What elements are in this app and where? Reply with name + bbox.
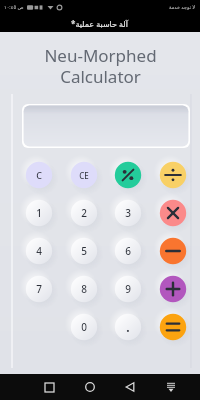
- button[interactable]: Back: [121, 378, 139, 396]
- button[interactable]: Equals: [158, 312, 188, 342]
- button[interactable]: Recents: [40, 378, 58, 396]
- button[interactable]: Subtract: [158, 236, 188, 266]
- button[interactable]: CE: [69, 160, 99, 190]
- button[interactable]: Multiply: [158, 198, 188, 228]
- button[interactable]: Percent: [113, 160, 143, 190]
- button[interactable]: 1: [24, 198, 54, 228]
- staticText: 2: [81, 206, 87, 220]
- staticText: لا توجد خدمة: [169, 4, 196, 11]
- staticText: 9: [125, 282, 131, 296]
- button[interactable]: Home: [81, 378, 99, 396]
- button[interactable]: Hide keyboard: [162, 378, 180, 396]
- button[interactable]: 9: [113, 274, 143, 304]
- staticText: 3: [125, 206, 131, 220]
- button[interactable]: Add: [158, 274, 188, 304]
- staticText: *آلة حاسبة عملية: [71, 18, 129, 29]
- staticText: 0: [81, 320, 87, 334]
- button[interactable]: 6: [113, 236, 143, 266]
- staticText: 1: [36, 206, 42, 220]
- staticText: 5: [81, 244, 87, 258]
- staticText: .: [126, 319, 130, 335]
- button[interactable]: 2: [69, 198, 99, 228]
- button[interactable]: Divide: [158, 160, 188, 190]
- staticText: 7: [36, 282, 42, 296]
- button[interactable]: 5: [69, 236, 99, 266]
- button[interactable]: C: [24, 160, 54, 190]
- staticText: 6: [125, 244, 131, 258]
- staticText: C: [36, 169, 42, 181]
- staticText: Neu-Morphed Calculator: [44, 44, 157, 88]
- button[interactable]: 3: [113, 198, 143, 228]
- button[interactable]: .: [113, 312, 143, 342]
- staticText: CE: [79, 170, 89, 181]
- button[interactable]: 0: [69, 312, 99, 342]
- button[interactable]: 4: [24, 236, 54, 266]
- staticText: 4: [36, 244, 42, 258]
- staticText: ص ١٠:٤٥: [4, 4, 24, 11]
- button[interactable]: 7: [24, 274, 54, 304]
- staticText: 8: [81, 282, 87, 296]
- button[interactable]: 8: [69, 274, 99, 304]
